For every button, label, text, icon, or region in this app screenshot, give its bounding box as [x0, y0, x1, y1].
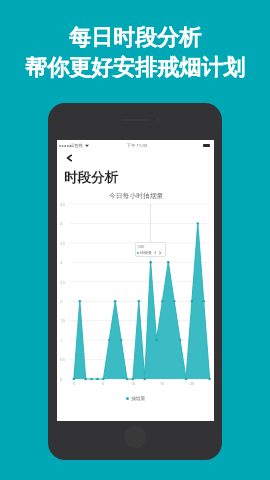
staticText: 时段分析 — [64, 169, 118, 186]
staticText: 2 — [60, 299, 63, 304]
staticText: 20 — [190, 381, 195, 386]
button[interactable]: Back — [62, 151, 76, 165]
staticText: 3 — [154, 250, 157, 255]
staticText: 1.5 — [60, 318, 66, 323]
button[interactable]: 13时 — [135, 242, 166, 257]
staticText: 2.5 — [60, 280, 66, 285]
staticText: 5 — [102, 381, 105, 386]
staticText: 3 — [60, 260, 63, 265]
staticText: 0 — [73, 381, 76, 386]
staticText: 4.5 — [60, 202, 66, 207]
staticText: 1 — [60, 338, 63, 343]
staticText: 运营商 — [70, 143, 83, 148]
staticText: 0 — [60, 377, 63, 382]
staticText: 抽烟量 — [140, 250, 152, 255]
staticText: 3.5 — [60, 241, 66, 246]
staticText: 15 — [160, 381, 165, 386]
staticText: 10 — [131, 381, 136, 386]
staticText: 13时 — [137, 244, 145, 249]
staticText: 0.5 — [60, 357, 66, 362]
staticText: 4 — [60, 221, 63, 226]
staticText: 帮你更好安排戒烟计划 — [25, 54, 245, 82]
staticText: 今日每小时抽烟量 — [109, 191, 164, 200]
staticText: 每日时段分析 — [69, 24, 201, 52]
staticText: 下午 11:03 — [127, 143, 148, 149]
staticText: 抽烟量 — [131, 395, 146, 401]
